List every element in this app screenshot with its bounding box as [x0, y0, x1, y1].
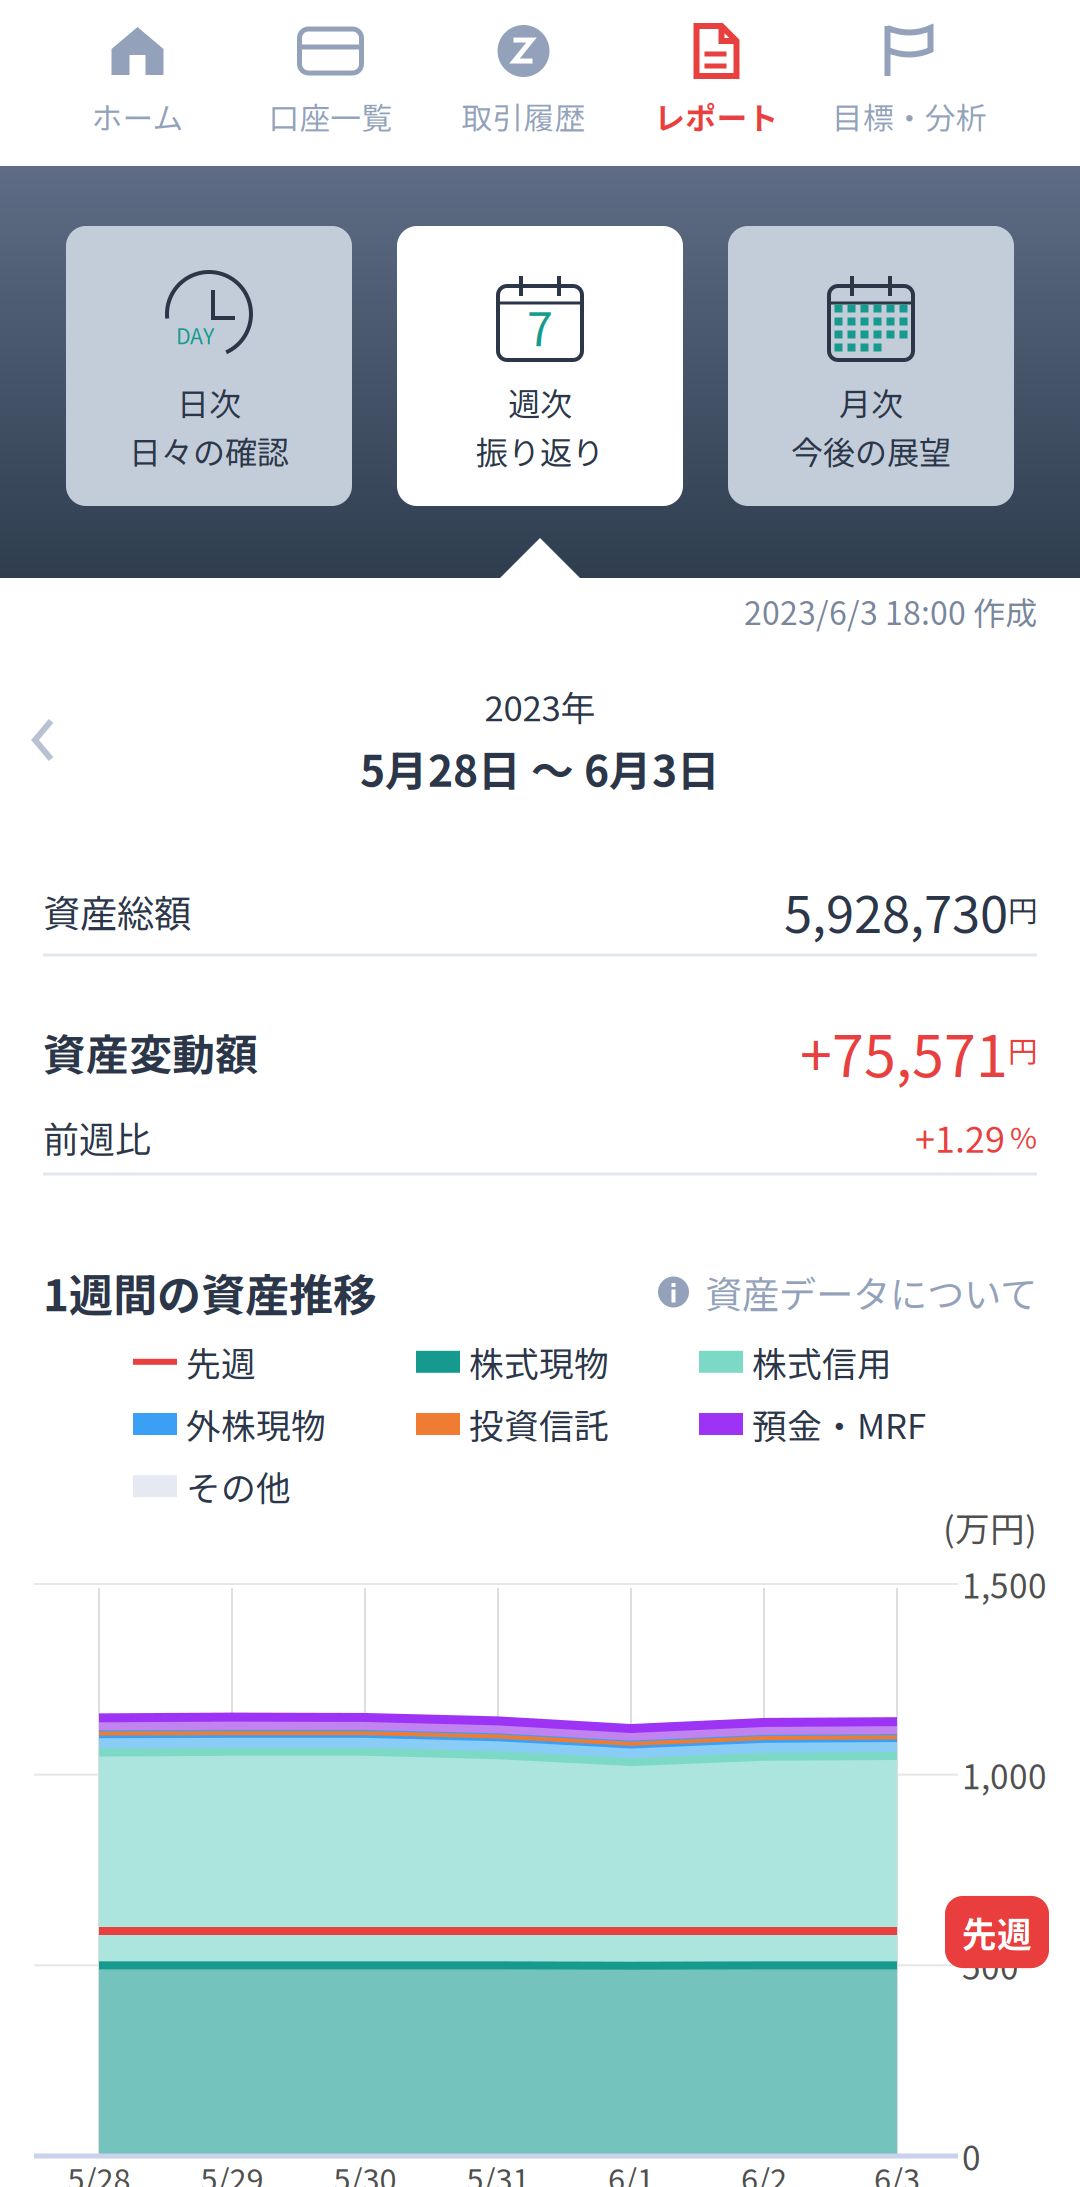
staticText: 預金・MRF: [752, 1399, 926, 1449]
staticText: (万円): [943, 1502, 1037, 1552]
staticText: 5/30: [333, 2156, 396, 2187]
staticText: 5/29: [200, 2156, 263, 2187]
staticText: 振り返り: [476, 427, 604, 474]
staticText: 口座一覧: [268, 94, 392, 138]
staticText: 月次: [839, 379, 903, 425]
staticText: +75,571: [800, 1010, 1008, 1093]
staticText: その他: [186, 1461, 291, 1511]
staticText: 株式現物: [469, 1337, 609, 1387]
staticText: 0: [962, 2132, 981, 2180]
button[interactable]: 前の週: [0, 692, 86, 788]
staticText: 5月28日 ～ 6月3日: [360, 737, 720, 799]
staticText: レポート: [654, 94, 778, 138]
staticText: 6/3: [874, 2156, 920, 2187]
staticText: 日次: [177, 379, 241, 425]
staticText: ホーム: [91, 94, 183, 138]
staticText: 週次: [508, 379, 572, 425]
button[interactable]: DAY: [66, 226, 352, 506]
staticText: 先週: [186, 1337, 256, 1387]
staticText: 2023/6/3 18:00 作成: [744, 588, 1037, 634]
staticText: 資産データについて: [705, 1265, 1037, 1319]
button[interactable]: ホーム: [41, 0, 234, 166]
staticText: 外株現物: [186, 1399, 326, 1449]
button[interactable]: 先週: [945, 1896, 1049, 1968]
staticText: 資産総額: [43, 884, 191, 938]
staticText: 1週間の資産推移: [43, 1260, 377, 1324]
staticText: 5/28: [67, 2156, 130, 2187]
staticText: 取引履歴: [461, 94, 585, 138]
staticText: 投資信託: [469, 1399, 609, 1449]
staticText: 今後の展望: [791, 427, 951, 474]
staticText: 目標・分析: [832, 94, 987, 138]
staticText: 1,500: [962, 1560, 1047, 1608]
staticText: 日々の確認: [129, 427, 289, 474]
staticText: 株式信用: [752, 1337, 892, 1387]
button[interactable]: レポート: [620, 0, 813, 166]
staticText: 2023年: [484, 681, 595, 731]
staticText: 5/31: [466, 2156, 529, 2187]
staticText: 500: [962, 1941, 1019, 1989]
staticText: 資産変動額: [43, 1021, 258, 1083]
staticText: 前週比: [43, 1111, 151, 1163]
button[interactable]: 取引履歴: [427, 0, 620, 166]
button[interactable]: 目標・分析: [813, 0, 1006, 166]
staticText: DAY: [176, 320, 214, 350]
staticText: +1.29: [915, 1111, 1005, 1163]
staticText: 1,000: [962, 1750, 1047, 1799]
staticText: 6/1: [608, 2156, 654, 2187]
staticText: 先週: [962, 1907, 1032, 1957]
staticText: 7: [527, 292, 553, 360]
button[interactable]: 7: [397, 226, 683, 506]
staticText: 円: [1008, 1029, 1037, 1071]
staticText: 円: [1008, 888, 1037, 931]
staticText: 6/2: [741, 2156, 787, 2187]
staticText: 5,928,730: [784, 874, 1008, 948]
button[interactable]: 月次: [728, 226, 1014, 506]
staticText: %: [1010, 1115, 1037, 1157]
button[interactable]: 資産データについて: [658, 1265, 1037, 1319]
button[interactable]: 口座一覧: [234, 0, 427, 166]
